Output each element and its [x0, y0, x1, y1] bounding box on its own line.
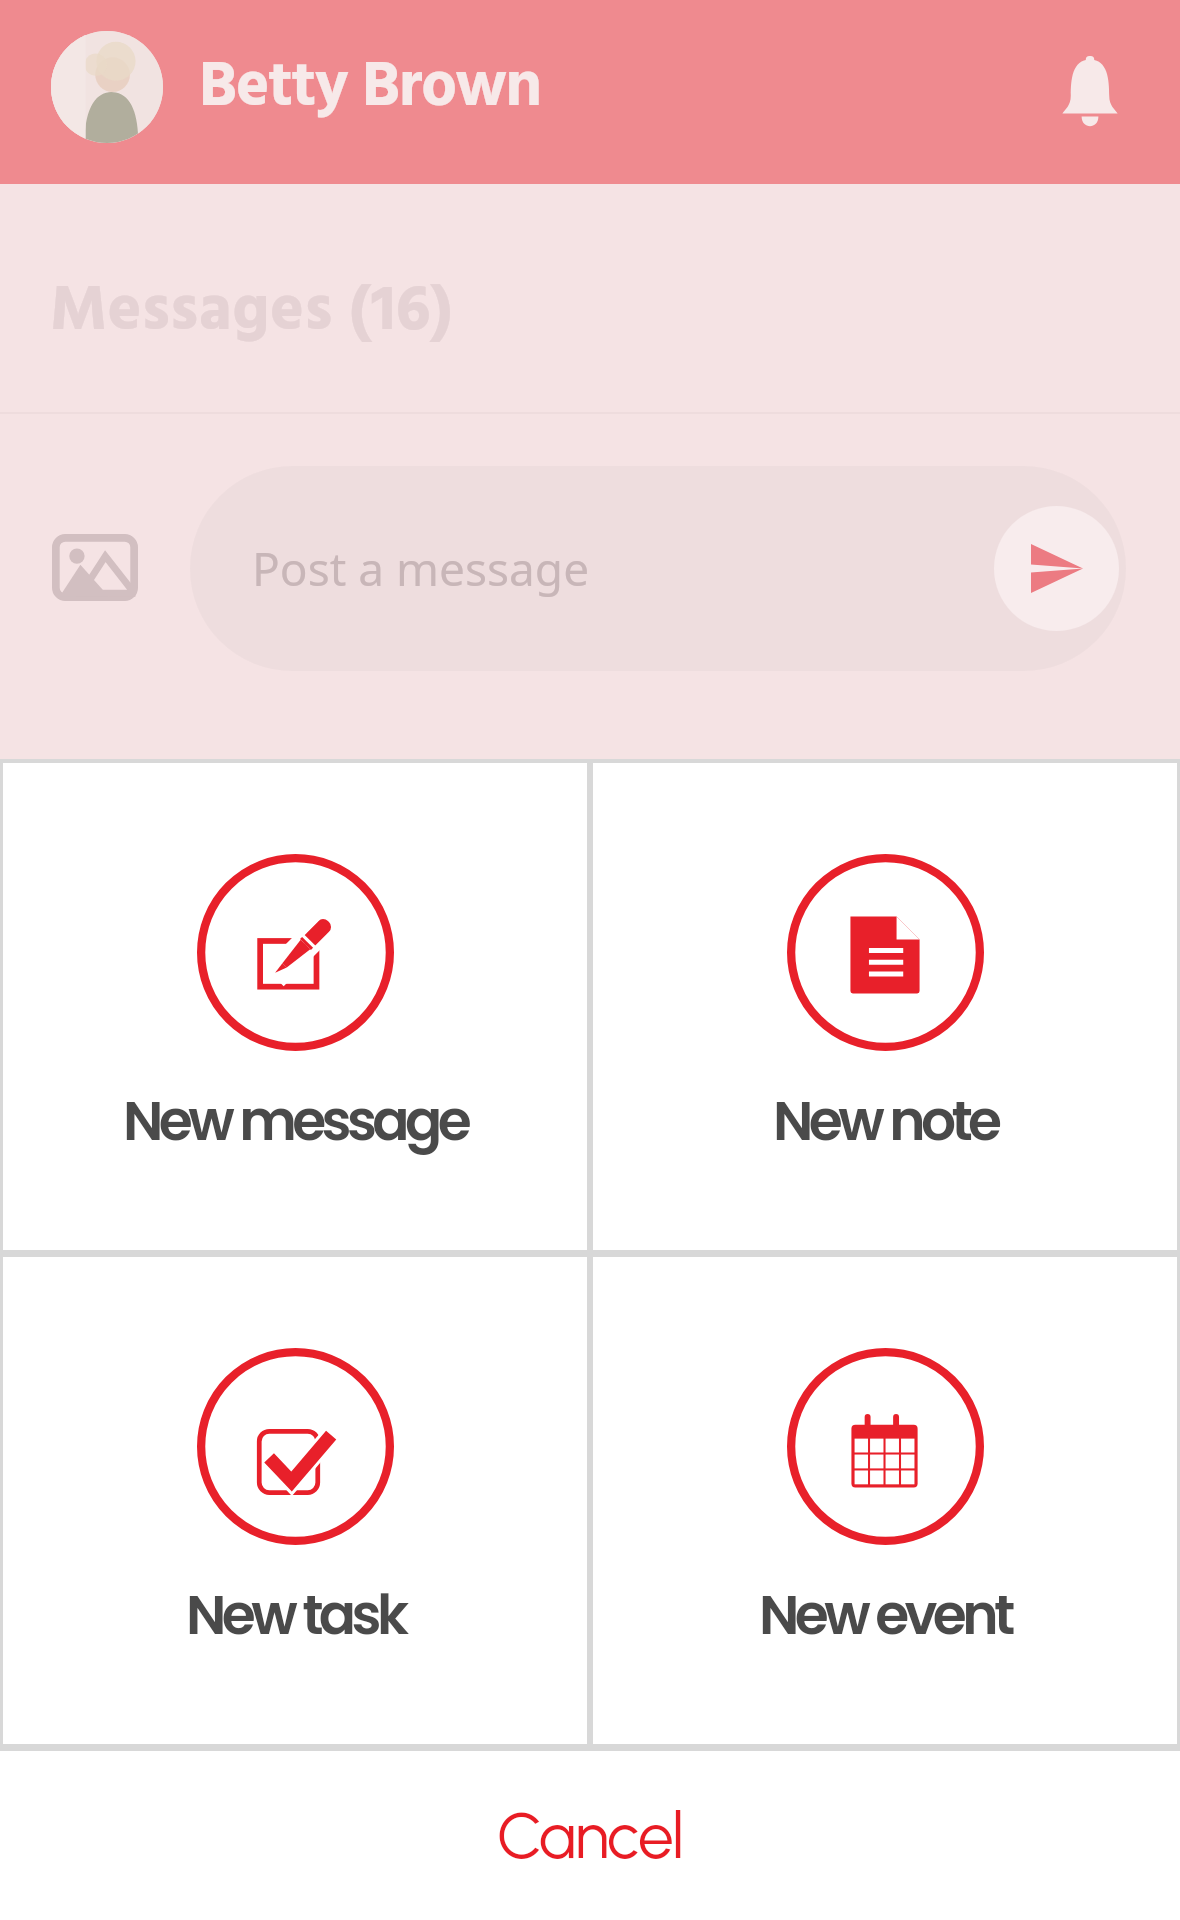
button[interactable]: New note — [593, 763, 1177, 1250]
button[interactable]: New message — [3, 763, 587, 1250]
staticText: New message — [123, 1082, 467, 1159]
staticText: Cancel — [497, 1797, 683, 1874]
button[interactable]: New task — [3, 1257, 587, 1744]
button[interactable]: Profile photo — [51, 31, 163, 143]
staticText: New event — [759, 1576, 1011, 1653]
staticText: New task — [186, 1576, 405, 1653]
button[interactable]: Cancel — [0, 1751, 1180, 1920]
button[interactable]: New event — [593, 1257, 1177, 1744]
button[interactable]: Post a message — [190, 466, 1126, 671]
staticText: Betty Brown — [199, 39, 541, 140]
button[interactable]: Notifications — [1038, 40, 1142, 144]
staticText: Messages (16) — [50, 261, 453, 363]
staticText: Post a message — [252, 537, 590, 600]
button[interactable]: Send message — [994, 506, 1119, 631]
staticText: New note — [773, 1082, 998, 1159]
button[interactable]: Attach image — [36, 518, 154, 616]
